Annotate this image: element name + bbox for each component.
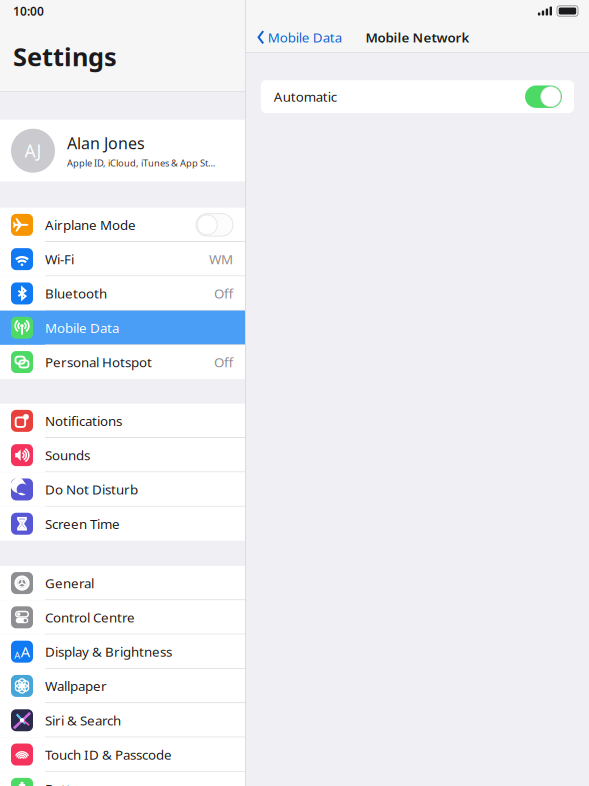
button[interactable]: Bluetooth xyxy=(0,276,245,311)
button[interactable]: Automatic xyxy=(261,80,574,113)
staticText: Do Not Disturb xyxy=(45,481,138,498)
button[interactable]: Battery xyxy=(0,772,245,786)
staticText: Off xyxy=(214,285,233,302)
staticText: Display & Brightness xyxy=(45,643,172,660)
button[interactable]: Airplane Mode xyxy=(0,208,245,242)
button[interactable]: Control Centre xyxy=(0,600,245,634)
staticText: Mobile Network xyxy=(365,28,469,46)
button[interactable]: Wi-Fi xyxy=(0,242,245,276)
staticText: Siri & Search xyxy=(45,711,121,729)
staticText: Alan Jones xyxy=(67,132,145,154)
staticText: WM xyxy=(209,250,233,268)
button[interactable]: AJ xyxy=(0,120,245,182)
button[interactable]: Notifications xyxy=(0,404,245,438)
staticText: 10:00 xyxy=(13,3,44,19)
button[interactable]: Personal Hotspot xyxy=(0,345,245,379)
button[interactable]: Siri & Search xyxy=(0,703,245,737)
button[interactable]: General xyxy=(0,566,245,600)
button[interactable]: Wallpaper xyxy=(0,669,245,703)
staticText: Automatic xyxy=(274,88,337,105)
staticText: AJ xyxy=(24,139,41,162)
button[interactable]: A xyxy=(0,634,245,669)
staticText: Battery xyxy=(45,780,92,786)
staticText: Airplane Mode xyxy=(45,216,136,234)
staticText: Off xyxy=(214,353,233,371)
staticText: Screen Time xyxy=(45,515,120,533)
staticText: General xyxy=(45,574,94,592)
staticText: Mobile Data xyxy=(268,28,342,46)
button[interactable]: Touch ID & Passcode xyxy=(0,737,245,772)
staticText: Touch ID & Passcode xyxy=(45,746,172,763)
staticText: Apple ID, iCloud, iTunes & App St… xyxy=(67,157,215,169)
staticText: Control Centre xyxy=(45,608,135,626)
button[interactable]: Sounds xyxy=(0,438,245,472)
staticText: Bluetooth xyxy=(45,285,107,302)
staticText: A xyxy=(21,642,30,661)
staticText: Notifications xyxy=(45,412,122,430)
staticText: Personal Hotspot xyxy=(45,353,152,371)
staticText: Wallpaper xyxy=(45,677,107,695)
staticText: Settings xyxy=(13,40,117,73)
button[interactable]: Screen Time xyxy=(0,507,245,541)
button[interactable]: Mobile Data xyxy=(246,26,342,48)
staticText: Mobile Data xyxy=(45,319,119,337)
staticText: Sounds xyxy=(45,446,90,464)
button[interactable]: Mobile Data xyxy=(0,311,245,345)
staticText: A xyxy=(14,649,20,661)
staticText: Wi-Fi xyxy=(45,250,74,268)
button[interactable]: Do Not Disturb xyxy=(0,472,245,507)
